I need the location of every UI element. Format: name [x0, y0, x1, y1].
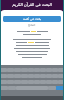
button[interactable]: بحث عن كلمة: [3, 16, 61, 22]
button[interactable]: [58, 80, 64, 84]
button[interactable]: [58, 74, 64, 78]
button[interactable]: [0, 80, 7, 84]
staticText: النتائج: [28, 23, 36, 26]
button[interactable]: [0, 74, 7, 78]
button[interactable]: [0, 68, 7, 72]
button[interactable]: Search: [56, 86, 64, 90]
staticText: بحث عن كلمة: [23, 17, 42, 21]
button[interactable]: [58, 68, 64, 72]
button[interactable]: Symbols: [0, 86, 8, 90]
staticText: البحث في القرآن الكريم: [12, 2, 52, 7]
